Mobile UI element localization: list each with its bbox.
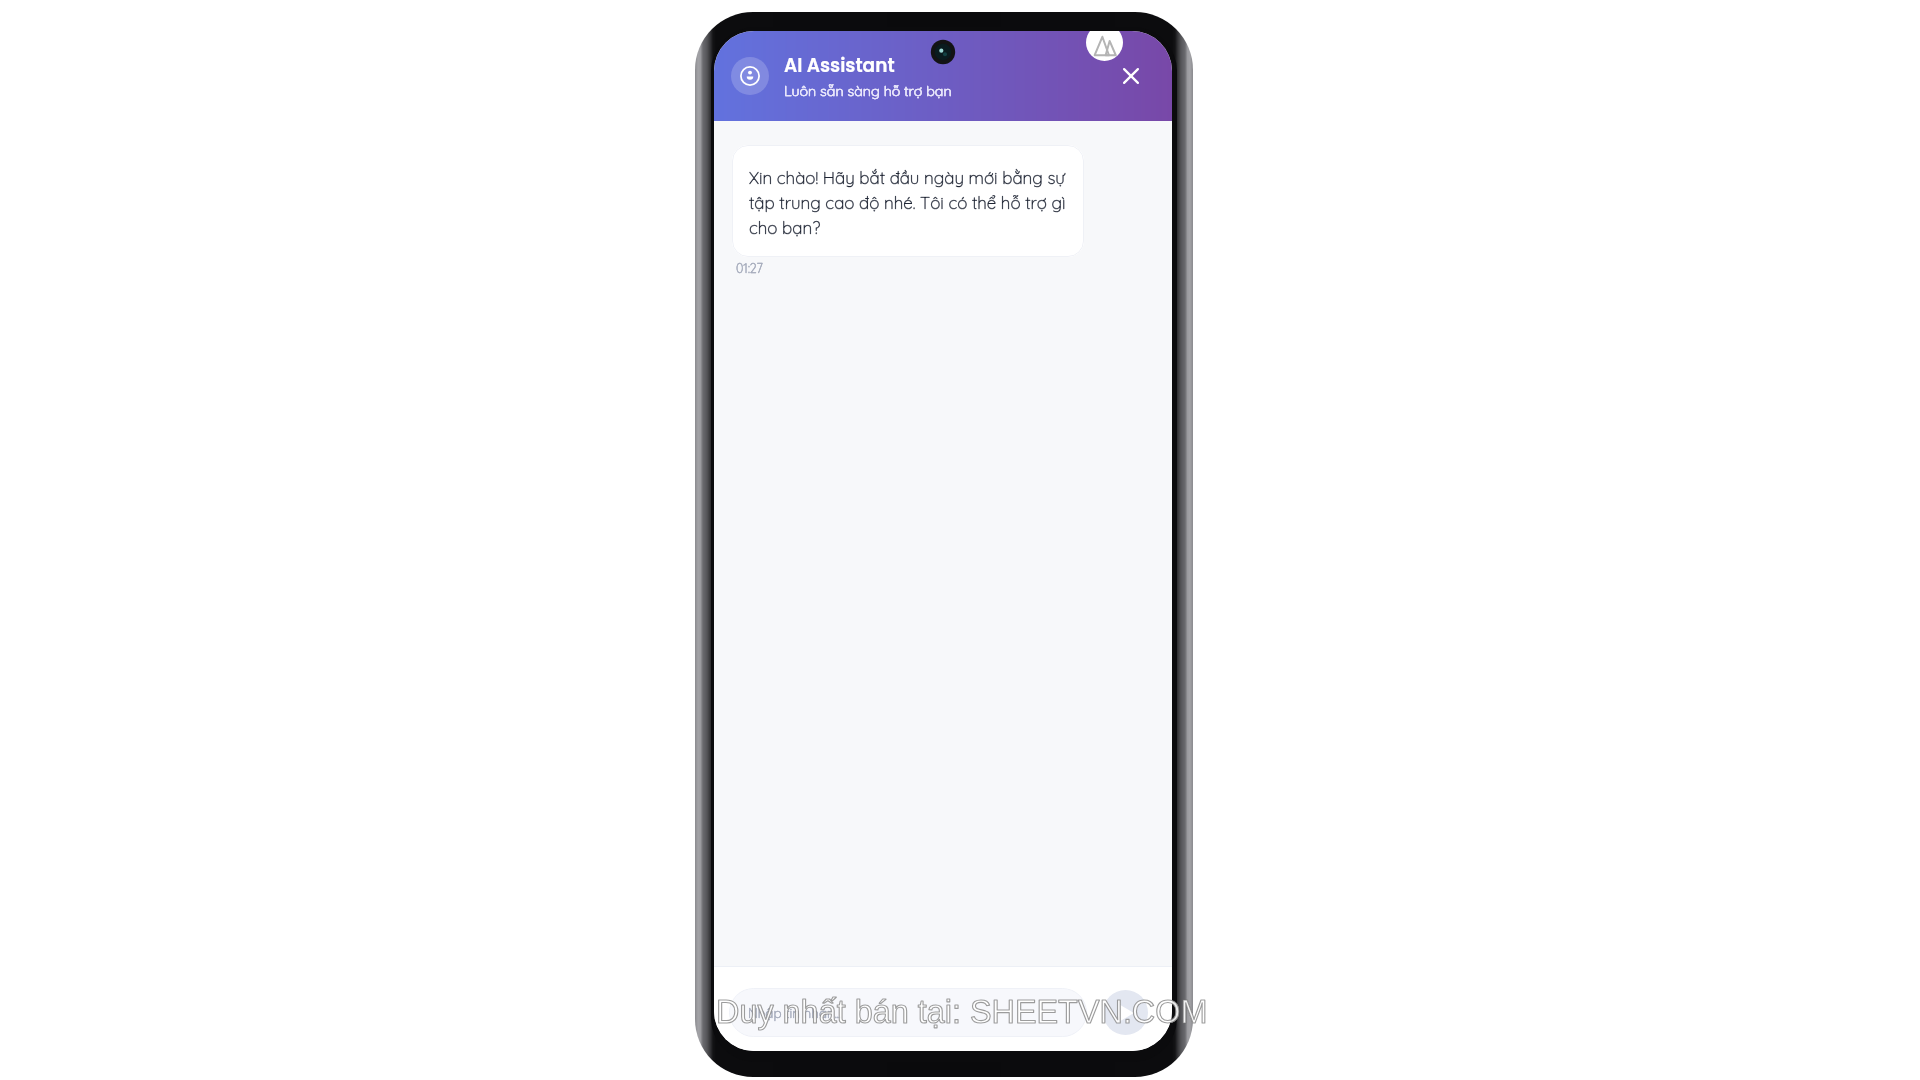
button[interactable]: Assistant avatar: [731, 57, 769, 95]
staticText: Nhập tin nhắn...: [748, 1004, 842, 1021]
staticText: AI Assistant: [784, 53, 895, 79]
button[interactable]: Nhập tin nhắn...: [729, 988, 1087, 1037]
staticText: 01:27: [736, 260, 763, 276]
staticText: Luôn sẵn sàng hỗ trợ bạn: [784, 82, 952, 100]
staticText: Luôn sẵn sàng hỗ trợ bạn: [784, 82, 952, 100]
staticText: Nhập tin nhắn...: [748, 1004, 842, 1021]
staticText: Duy nhất bán tại: SHEETVN.COM: [716, 994, 1208, 1030]
staticText: Xin chào! Hãy bắt đầu ngày mới bằng sự t…: [749, 167, 1066, 238]
staticText: Duy nhất bán tại: SHEETVN.COM: [716, 994, 1208, 1030]
staticText: 01:27: [736, 260, 763, 276]
button[interactable]: Xin chào! Hãy bắt đầu ngày mới bằng sự t…: [732, 145, 1084, 257]
staticText: Xin chào! Hãy bắt đầu ngày mới bằng sự t…: [749, 167, 1066, 238]
button[interactable]: Send: [1103, 990, 1148, 1035]
button[interactable]: Close: [1110, 55, 1152, 97]
